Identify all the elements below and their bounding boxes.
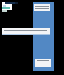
button[interactable]: Details panel — [33, 2, 54, 71]
button[interactable] — [35, 59, 51, 67]
button[interactable] — [2, 2, 12, 10]
button[interactable] — [34, 4, 50, 11]
button[interactable] — [2, 28, 50, 34]
